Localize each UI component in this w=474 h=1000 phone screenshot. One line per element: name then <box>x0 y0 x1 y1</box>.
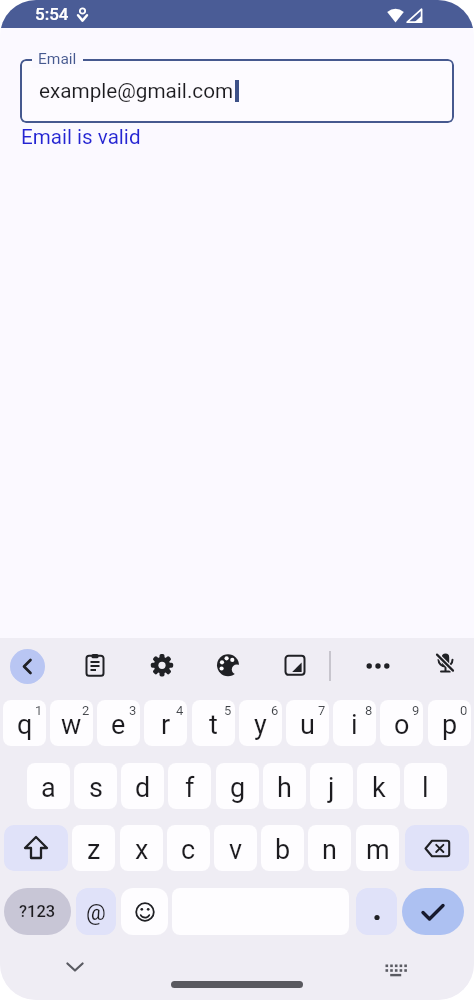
staticText: f <box>185 772 195 804</box>
button[interactable]: ?123 <box>4 888 71 935</box>
staticText: i <box>351 709 358 741</box>
button[interactable] <box>384 962 408 980</box>
button[interactable]: w <box>50 700 93 746</box>
button[interactable]: a <box>27 763 70 809</box>
staticText: t <box>209 709 218 741</box>
staticText: j <box>328 772 335 804</box>
staticText: 2 <box>82 703 90 718</box>
staticText: x <box>135 834 149 866</box>
staticText: 7 <box>318 703 326 718</box>
button[interactable]: c <box>167 825 210 871</box>
staticText: y <box>254 709 267 741</box>
button[interactable] <box>10 649 45 684</box>
staticText: 8 <box>365 703 373 718</box>
button[interactable]: d <box>121 763 164 809</box>
button[interactable]: b <box>261 825 304 871</box>
staticText: m <box>366 834 390 866</box>
button[interactable] <box>356 888 397 935</box>
staticText: example@gmail.com <box>39 79 234 103</box>
staticText: u <box>300 709 315 741</box>
button[interactable] <box>64 958 86 976</box>
staticText: r <box>161 709 171 741</box>
staticText: k <box>372 772 386 804</box>
staticText: a <box>41 772 56 804</box>
button[interactable] <box>216 653 240 677</box>
staticText: p <box>442 709 458 741</box>
staticText: s <box>89 772 103 804</box>
button[interactable]: k <box>357 763 400 809</box>
button[interactable] <box>150 653 174 677</box>
button[interactable]: i <box>333 700 376 746</box>
button[interactable] <box>283 653 307 677</box>
staticText: c <box>181 834 196 866</box>
button[interactable]: m <box>356 825 399 871</box>
button[interactable] <box>433 652 458 677</box>
button[interactable]: g <box>216 763 259 809</box>
button[interactable]: z <box>72 825 115 871</box>
staticText: g <box>230 772 246 804</box>
button[interactable] <box>83 653 107 677</box>
staticText: 5 <box>224 703 232 718</box>
button[interactable]: y <box>239 700 282 746</box>
button[interactable]: e <box>97 700 140 746</box>
staticText: 1 <box>35 703 43 718</box>
button[interactable] <box>366 654 390 678</box>
button[interactable]: v <box>214 825 257 871</box>
button[interactable]: j <box>310 763 353 809</box>
button[interactable]: x <box>120 825 163 871</box>
button[interactable]: f <box>168 763 211 809</box>
staticText: v <box>229 834 243 866</box>
staticText: @ <box>86 900 106 926</box>
button[interactable]: o <box>380 700 423 746</box>
staticText: l <box>422 772 429 804</box>
button[interactable]: n <box>308 825 351 871</box>
staticText: Email is valid <box>21 125 141 149</box>
staticText: q <box>17 709 33 741</box>
button[interactable] <box>402 888 464 935</box>
button[interactable] <box>405 825 469 871</box>
staticText: 9 <box>412 703 420 718</box>
button[interactable] <box>121 888 168 935</box>
staticText: h <box>277 772 292 804</box>
staticText: b <box>275 834 291 866</box>
staticText: 4 <box>176 703 184 718</box>
button[interactable]: t <box>192 700 235 746</box>
button[interactable] <box>4 825 68 871</box>
staticText: d <box>135 772 151 804</box>
staticText: 3 <box>129 703 137 718</box>
staticText: w <box>61 709 82 741</box>
staticText: o <box>394 709 410 741</box>
staticText: e <box>111 709 126 741</box>
staticText: z <box>87 834 101 866</box>
staticText: Email <box>38 50 77 68</box>
button[interactable]: s <box>74 763 117 809</box>
staticText: 5:54 <box>35 4 69 24</box>
button[interactable]: l <box>404 763 447 809</box>
button[interactable]: example@gmail.com <box>20 59 454 123</box>
staticText: n <box>322 834 337 866</box>
button[interactable]: p <box>428 700 471 746</box>
button[interactable]: r <box>144 700 187 746</box>
button[interactable]: u <box>286 700 329 746</box>
button[interactable]: @ <box>76 888 116 935</box>
button[interactable]: q <box>3 700 46 746</box>
staticText: 6 <box>271 703 279 718</box>
staticText: 0 <box>460 703 468 718</box>
staticText: ?123 <box>19 902 56 921</box>
button[interactable]: h <box>263 763 306 809</box>
